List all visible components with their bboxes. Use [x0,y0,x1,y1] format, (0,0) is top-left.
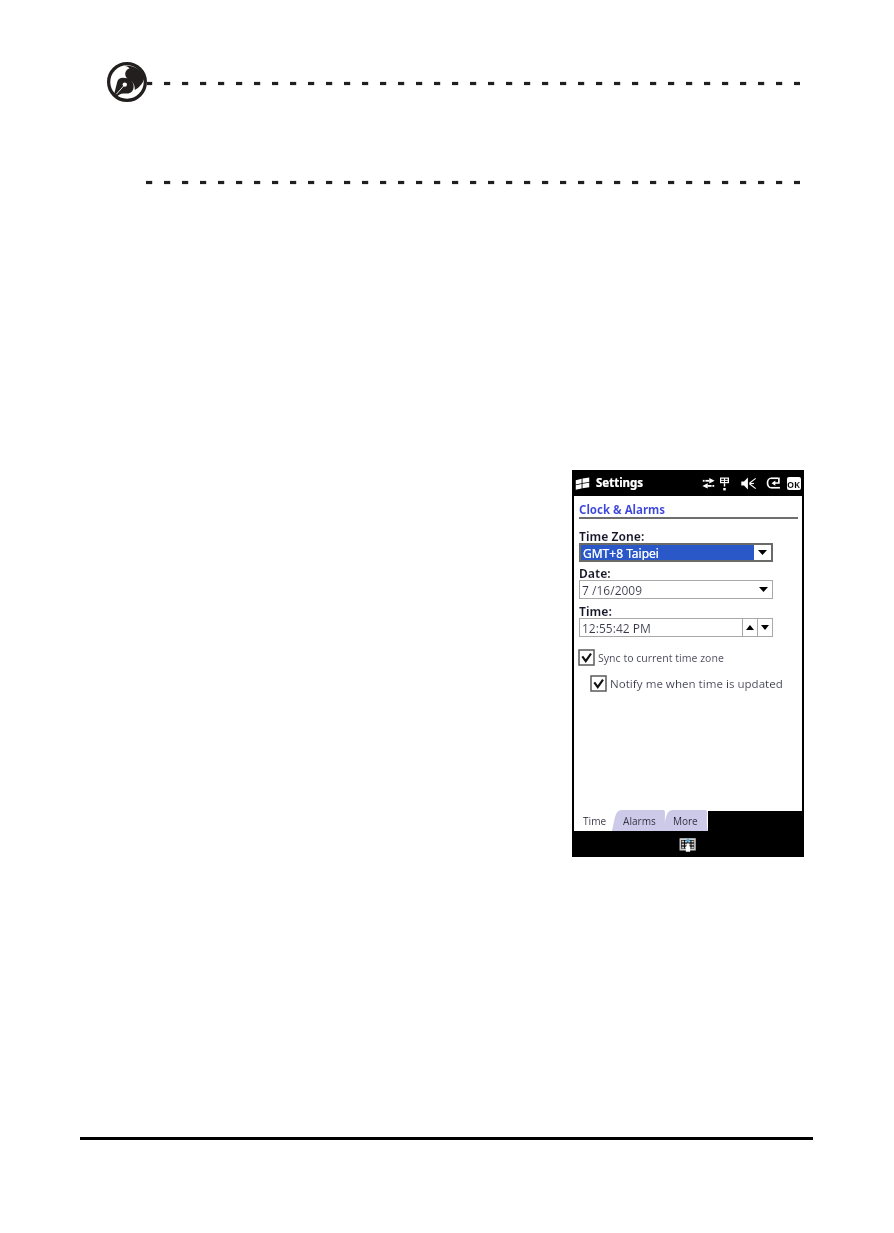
staticText: Clock & Alarms [579,502,666,518]
button[interactable]: Volume [741,476,756,491]
staticText: More [673,814,698,828]
staticText: Time Zone: [579,528,645,544]
button[interactable]: GMT+8 Taipei [581,545,771,560]
staticText: 7 /16/2009 [582,582,643,598]
staticText: Alarms [623,814,656,828]
button[interactable]: Time [574,810,615,831]
button[interactable]: Connectivity [702,476,715,491]
staticText: OK [787,478,801,490]
button[interactable]: Enter [766,476,781,490]
button[interactable]: 12:55:42 PM [580,619,772,636]
other: Acer logo [107,62,147,102]
button[interactable]: OK [787,477,801,490]
staticText: Notify me when time is updated [610,676,783,691]
button[interactable]: Alarms [612,810,666,831]
staticText: GMT+8 Taipei [583,545,659,560]
staticText: Sync to current time zone [598,651,724,665]
staticText: Settings [596,475,644,491]
staticText: Time: [579,603,612,619]
staticText: Time [583,814,607,828]
button[interactable]: Network [720,476,729,491]
button[interactable]: More [663,810,708,831]
button[interactable]: Sync to current time zone [579,650,724,665]
button[interactable]: 7 /16/2009 [580,581,772,598]
button[interactable]: Input panel [679,837,697,852]
button[interactable]: Increase [743,619,757,636]
button[interactable]: Notify me when time is updated [591,676,783,691]
button[interactable]: Decrease [758,619,772,636]
staticText: 12:55:42 PM [582,620,651,636]
staticText: Date: [579,565,611,581]
